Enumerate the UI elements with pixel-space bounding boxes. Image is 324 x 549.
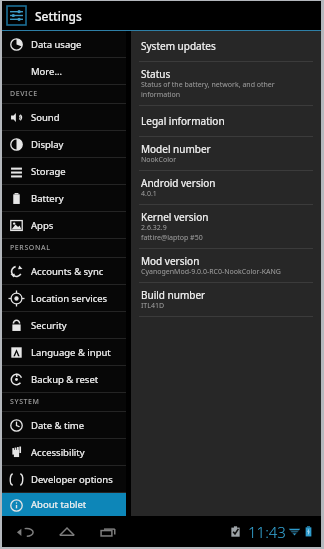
button[interactable]: More…: [2, 58, 126, 84]
button[interactable]: Recents: [96, 519, 122, 545]
button[interactable]: Home: [54, 519, 80, 545]
button[interactable]: Settings: [6, 5, 27, 26]
button[interactable]: Accounts & sync: [2, 258, 126, 284]
staticText: Storage: [31, 165, 66, 178]
button[interactable]: Storage: [2, 158, 126, 184]
staticText: Security: [31, 319, 67, 332]
button[interactable]: Date & time: [2, 412, 126, 438]
staticText: Battery: [31, 192, 64, 205]
button[interactable]: System updates: [131, 31, 321, 61]
button[interactable]: Status: [131, 62, 321, 105]
staticText: information: [141, 90, 181, 100]
staticText: CyanogenMod-9.0.0-RC0-NookColor-KANG: [141, 267, 281, 277]
staticText: ITL41D: [141, 301, 165, 311]
staticText: Data usage: [31, 38, 82, 51]
staticText: More…: [31, 65, 62, 78]
staticText: PERSONAL: [10, 243, 51, 253]
staticText: About tablet: [31, 498, 87, 511]
button[interactable]: Sound: [2, 104, 126, 130]
staticText: Kernel version: [141, 210, 209, 223]
staticText: Legal information: [141, 114, 225, 128]
staticText: Display: [31, 138, 64, 151]
button[interactable]: Developer options: [2, 466, 126, 492]
staticText: Date & time: [31, 419, 85, 432]
staticText: 4.0.1: [141, 189, 157, 199]
button[interactable]: Language & input: [2, 339, 126, 365]
button[interactable]: Build number: [131, 283, 321, 316]
button[interactable]: Backup & reset: [2, 366, 126, 392]
staticText: 2.6.32.9: [141, 223, 167, 233]
staticText: Status: [141, 67, 171, 80]
button[interactable]: Location services: [2, 285, 126, 311]
button[interactable]: Kernel version: [131, 205, 321, 248]
staticText: Language & input: [31, 346, 111, 359]
staticText: Build number: [141, 288, 206, 301]
button[interactable]: Android version: [131, 171, 321, 204]
staticText: Developer options: [31, 473, 113, 486]
staticText: fattire@laptop #50: [141, 233, 203, 243]
staticText: Mod version: [141, 254, 200, 267]
staticText: DEVICE: [10, 89, 38, 99]
staticText: Sound: [31, 111, 60, 124]
staticText: SYSTEM: [10, 397, 40, 407]
staticText: Model number: [141, 142, 211, 155]
staticText: Android version: [141, 176, 216, 189]
button[interactable]: Display: [2, 131, 126, 157]
button[interactable]: About tablet: [2, 493, 126, 516]
staticText: Status of the battery, network, and othe…: [141, 80, 275, 90]
button[interactable]: Mod version: [131, 249, 321, 282]
button[interactable]: Accessibility: [2, 439, 126, 465]
staticText: Settings: [35, 8, 82, 24]
button[interactable]: Back: [12, 519, 38, 545]
staticText: Location services: [31, 292, 108, 305]
staticText: Backup & reset: [31, 373, 99, 386]
staticText: System updates: [141, 39, 216, 53]
button[interactable]: Model number: [131, 137, 321, 170]
button[interactable]: Legal information: [131, 106, 321, 136]
button[interactable]: Security: [2, 312, 126, 338]
staticText: NookColor: [141, 155, 177, 165]
staticText: Accounts & sync: [31, 265, 104, 278]
staticText: Apps: [31, 219, 54, 232]
staticText: 11:43: [248, 522, 286, 542]
button[interactable]: Battery: [2, 185, 126, 211]
button[interactable]: Data usage: [2, 31, 126, 57]
button[interactable]: Apps: [2, 212, 126, 238]
staticText: Accessibility: [31, 446, 85, 459]
